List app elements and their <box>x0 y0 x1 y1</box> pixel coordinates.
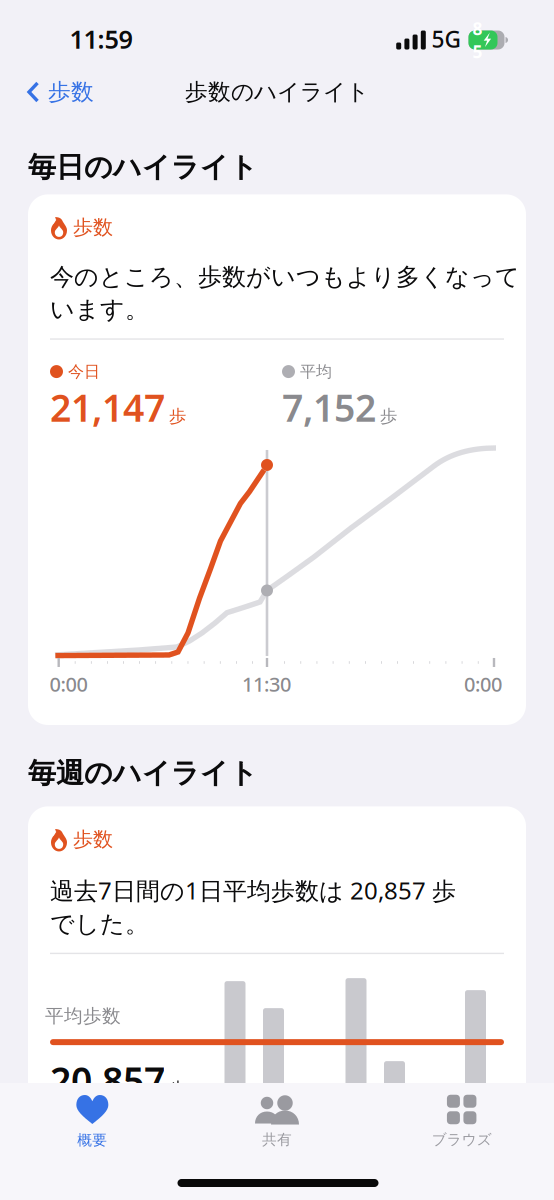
staticText: 毎週のハイライト <box>28 756 258 790</box>
staticText: 概要 <box>77 1131 107 1149</box>
staticText: でした。 <box>50 909 149 939</box>
staticText: 7,152 <box>282 382 376 432</box>
staticText: 11:59 <box>69 22 132 56</box>
staticText: 歩 <box>169 1078 186 1100</box>
staticText: 21,147 <box>50 382 165 432</box>
button[interactable]: 概要 <box>0 1083 185 1149</box>
staticText: 0:00 <box>49 671 87 697</box>
staticText: 今のところ、歩数がいつもより多くなって <box>50 262 520 292</box>
staticText: 11:30 <box>242 671 291 697</box>
button[interactable]: ブラウズ <box>369 1083 554 1148</box>
staticText: 歩 <box>380 406 397 427</box>
button[interactable]: 歩数 <box>16 67 104 117</box>
staticText: 共有 <box>262 1130 292 1148</box>
staticText: 歩数 <box>48 78 94 106</box>
staticText: 85 <box>472 17 482 63</box>
staticText: 過去7日間の1日平均歩数は 20,857 歩 <box>50 874 456 906</box>
staticText: 20,857 <box>50 1055 165 1105</box>
staticText: 歩数のハイライト <box>185 78 369 106</box>
button[interactable]: 共有 <box>185 1083 369 1148</box>
staticText: 0:00 <box>464 671 502 697</box>
staticText: 歩 <box>169 406 186 427</box>
staticText: 平均 <box>300 362 332 381</box>
staticText: 歩数 <box>73 215 113 240</box>
staticText: 今日 <box>68 362 100 381</box>
staticText: 5G <box>431 24 460 54</box>
staticText: ブラウズ <box>432 1130 492 1148</box>
staticText: 平均歩数 <box>45 1005 121 1028</box>
staticText: います。 <box>50 295 149 324</box>
staticText: 毎日のハイライト <box>28 150 258 184</box>
staticText: 歩数 <box>73 827 113 852</box>
